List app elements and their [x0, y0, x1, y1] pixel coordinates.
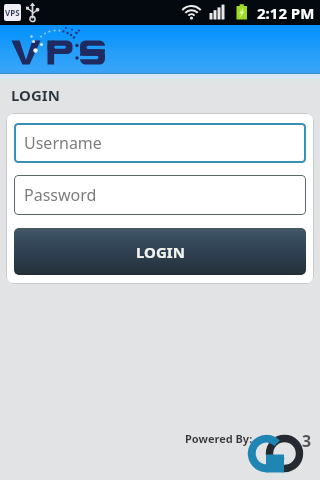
button[interactable]: Password: [14, 175, 306, 215]
button[interactable]: Username: [14, 123, 306, 163]
staticText: 3: [302, 430, 312, 452]
staticText: LOGIN: [11, 85, 60, 105]
staticText: LOGIN: [136, 242, 185, 262]
staticText: Username: [24, 132, 102, 154]
staticText: Password: [24, 184, 97, 206]
staticText: VPS: [5, 7, 20, 18]
staticText: Powered By:: [185, 431, 253, 446]
button[interactable]: LOGIN: [14, 228, 306, 275]
staticText: 2:12 PM: [257, 3, 315, 23]
